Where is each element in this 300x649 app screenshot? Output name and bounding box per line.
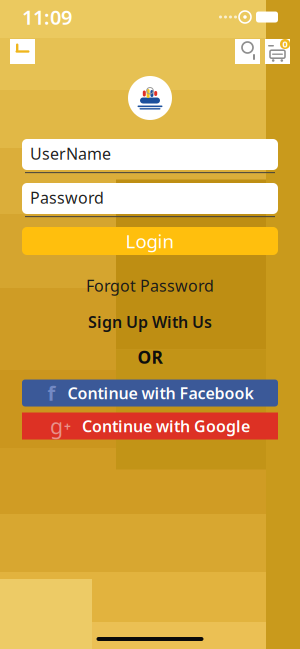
staticText: Continue with Facebook: [67, 382, 253, 404]
staticText: +: [64, 418, 71, 434]
staticText: Password: [30, 187, 104, 208]
staticText: f: [47, 380, 55, 406]
staticText: 11:09: [22, 4, 72, 30]
button[interactable]: Back: [10, 39, 35, 64]
staticText: Forgot Password: [86, 275, 214, 296]
button[interactable]: g: [22, 412, 278, 439]
staticText: UserName: [30, 143, 111, 164]
staticText: OR: [137, 345, 162, 368]
button[interactable]: f: [22, 379, 278, 406]
staticText: 0: [282, 38, 287, 50]
staticText: Continue with Google: [82, 415, 250, 437]
button[interactable]: Forgot Password: [74, 271, 226, 300]
button[interactable]: Sign Up With Us: [76, 307, 224, 336]
button[interactable]: Search: [235, 39, 260, 64]
staticText: g: [50, 412, 63, 440]
staticText: Sign Up With Us: [88, 311, 212, 332]
staticText: Login: [125, 229, 174, 253]
button[interactable]: Login: [22, 227, 278, 255]
button[interactable]: Shopping cart, 0 items: [265, 39, 290, 64]
